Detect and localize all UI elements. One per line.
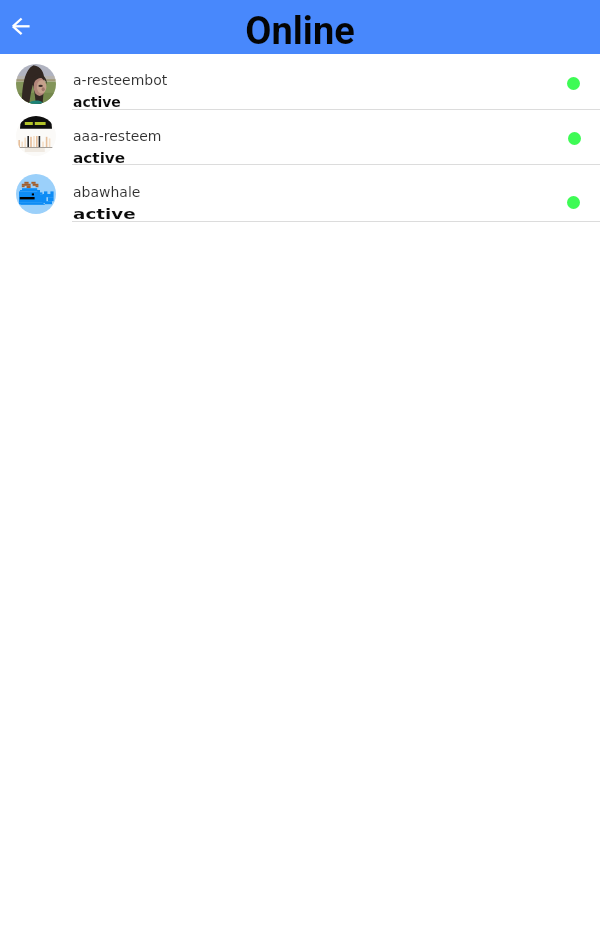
button[interactable] (0, 164, 600, 222)
button[interactable]: Back (0, 4, 46, 50)
staticText: a-resteembot (73, 72, 168, 88)
staticText: abawhale (73, 184, 141, 200)
staticText: Online (245, 9, 355, 54)
staticText: aaa-resteem (73, 128, 162, 144)
staticText: active (73, 206, 136, 222)
staticText: active (73, 150, 125, 166)
button[interactable] (0, 54, 600, 110)
staticText: active (73, 94, 121, 110)
button[interactable] (0, 109, 600, 165)
